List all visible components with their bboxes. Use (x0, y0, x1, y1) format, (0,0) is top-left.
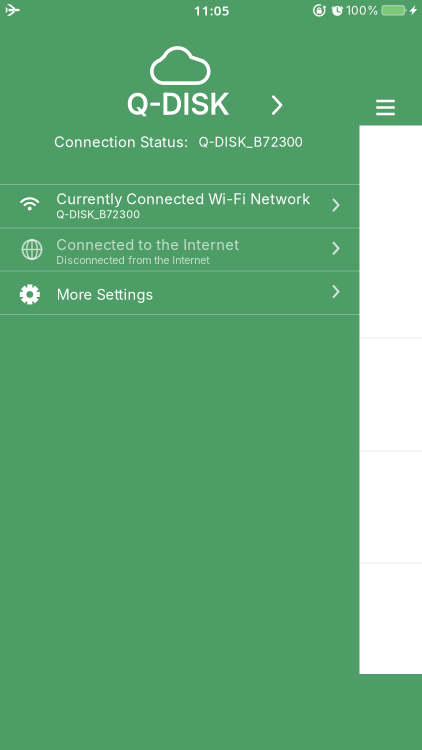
staticText: Currently Connected Wi-Fi Network (56, 190, 310, 207)
button[interactable]: Currently Connected Wi-Fi Network (0, 184, 360, 228)
button[interactable]: More Settings (0, 271, 360, 314)
button[interactable]: Connected to the Internet (0, 228, 360, 271)
staticText: 11:05 (194, 1, 230, 19)
staticText: Q-DISK_B72300 (56, 208, 140, 221)
staticText: Q-DISK (126, 86, 229, 122)
staticText: Connected to the Internet (56, 236, 239, 253)
staticText: Disconnected from the Internet (56, 254, 209, 266)
staticText: 100% (346, 3, 379, 18)
button[interactable]: Q-DISK (80, 34, 300, 124)
staticText: Connection Status: (54, 133, 188, 151)
staticText: More Settings (56, 286, 153, 303)
button[interactable]: Menu (366, 92, 404, 123)
staticText: Q-DISK_B72300 (198, 134, 302, 150)
